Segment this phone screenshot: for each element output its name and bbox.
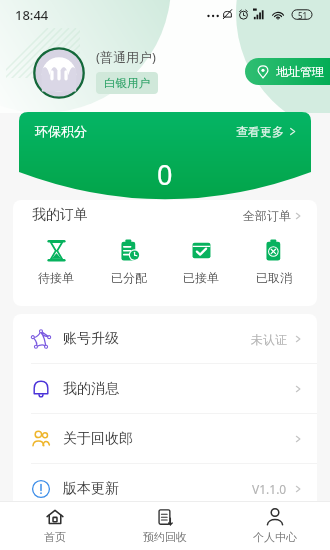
staticText: 51	[298, 10, 308, 21]
staticText: 地址管理	[276, 64, 324, 79]
button[interactable]: 已接单	[172, 239, 230, 285]
staticText: 首页	[44, 530, 66, 544]
button[interactable]: 待接单	[27, 239, 85, 285]
staticText: 已接单	[183, 270, 219, 285]
staticText: 18:44	[15, 6, 49, 24]
staticText: 0	[157, 156, 173, 193]
button[interactable]: 关于回收郎	[13, 414, 317, 464]
staticText: (普通用户)	[96, 48, 156, 66]
button[interactable]: 我的消息	[13, 364, 317, 414]
button[interactable]: 查看更多	[236, 124, 297, 139]
button[interactable]: 个人中心	[220, 502, 330, 550]
staticText: 未认证	[251, 332, 287, 347]
staticText: 我的消息	[63, 380, 119, 398]
staticText: 账号升级	[63, 330, 119, 348]
button[interactable]: 账号升级	[13, 314, 317, 364]
staticText: 查看更多	[236, 124, 284, 139]
staticText: 白银用户	[104, 76, 150, 90]
staticText: V1.1.0	[252, 481, 287, 497]
button[interactable]: 预约回收	[110, 502, 220, 550]
button[interactable]: 用户头像	[33, 47, 85, 99]
button[interactable]: 全部订单	[243, 208, 302, 223]
staticText: 全部订单	[243, 208, 291, 223]
staticText: 预约回收	[143, 530, 187, 544]
staticText: 环保积分	[35, 123, 87, 139]
staticText: 待接单	[38, 270, 74, 285]
button[interactable]: 白银用户	[96, 72, 158, 94]
staticText: 关于回收郎	[63, 430, 133, 448]
staticText: 我的订单	[32, 206, 88, 224]
button[interactable]: 版本更新	[13, 464, 317, 514]
button[interactable]: 首页	[0, 502, 110, 550]
button[interactable]: 地址管理	[245, 58, 330, 85]
staticText: 已取消	[256, 270, 292, 285]
staticText: 版本更新	[63, 480, 119, 498]
staticText: 个人中心	[253, 530, 297, 544]
button[interactable]: 已取消	[245, 239, 303, 285]
staticText: 已分配	[111, 270, 147, 285]
button[interactable]: 已分配	[100, 239, 158, 285]
